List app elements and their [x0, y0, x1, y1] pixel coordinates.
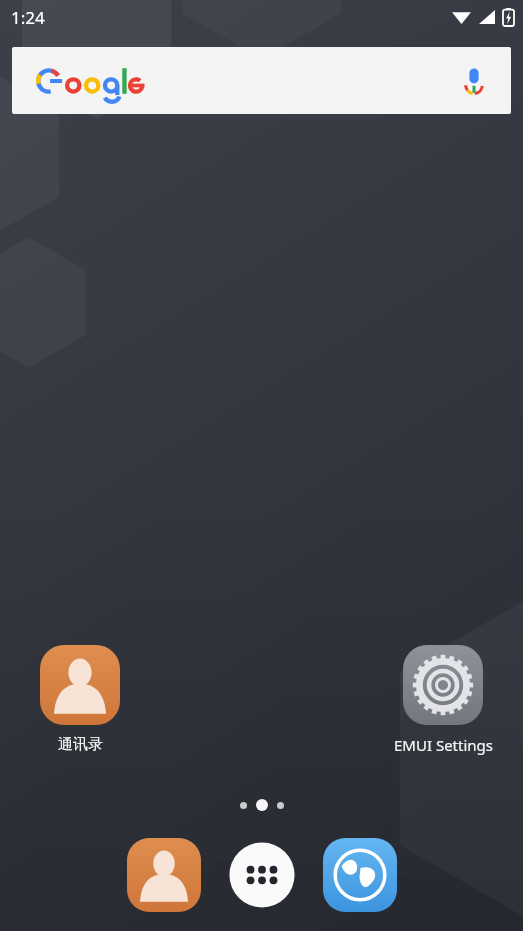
button[interactable]: Voice search — [457, 64, 491, 98]
staticText: 1:24 — [11, 6, 45, 29]
button[interactable]: Contacts — [127, 838, 201, 912]
button[interactable]: Browser — [323, 838, 397, 912]
staticText: 通讯录 — [58, 735, 103, 754]
button[interactable]: EMUI Settings — [363, 645, 523, 755]
button[interactable]: All apps — [225, 838, 299, 912]
button[interactable]: 通讯录 — [0, 645, 160, 754]
button[interactable]: Voice search — [12, 47, 511, 114]
staticText: EMUI Settings — [394, 735, 493, 755]
